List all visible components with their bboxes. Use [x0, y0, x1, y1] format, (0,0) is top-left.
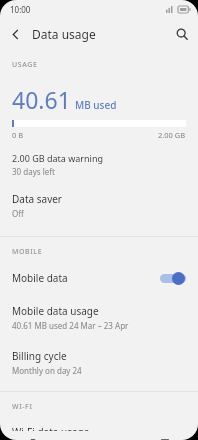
button[interactable]: Data saver: [0, 183, 198, 228]
staticText: 30 days left: [12, 166, 55, 177]
staticText: 40.61 MB used 24 Mar – 23 Apr: [12, 320, 129, 331]
staticText: Monthly on day 24: [12, 365, 82, 376]
staticText: Data saver: [12, 192, 62, 206]
staticText: 40.61: [12, 84, 71, 115]
staticText: WI-FI: [12, 402, 33, 412]
staticText: Data usage: [32, 26, 96, 42]
staticText: MB used: [75, 98, 117, 112]
staticText: Mobile data: [12, 271, 68, 285]
staticText: Mobile data usage: [12, 304, 99, 318]
staticText: 0 B: [12, 130, 24, 140]
staticText: Billing cycle: [12, 349, 67, 363]
staticText: Off: [12, 208, 24, 219]
button[interactable]: Billing cycle: [0, 340, 198, 385]
button[interactable]: Back: [0, 19, 30, 49]
staticText: USAGE: [12, 60, 38, 70]
staticText: 10:00: [10, 4, 31, 15]
button[interactable]: Search: [166, 18, 198, 50]
button[interactable]: Wi-Fi data usage: [0, 416, 198, 440]
button[interactable]: Mobile data: [0, 261, 198, 295]
staticText: Wi-Fi data usage: [12, 425, 90, 431]
staticText: 2.00 GB: [158, 130, 186, 140]
staticText: 2.00 GB data warning: [12, 152, 103, 164]
button[interactable]: Mobile data usage: [0, 295, 198, 340]
staticText: MOBILE: [12, 247, 43, 257]
button[interactable]: 40.61: [0, 74, 198, 183]
